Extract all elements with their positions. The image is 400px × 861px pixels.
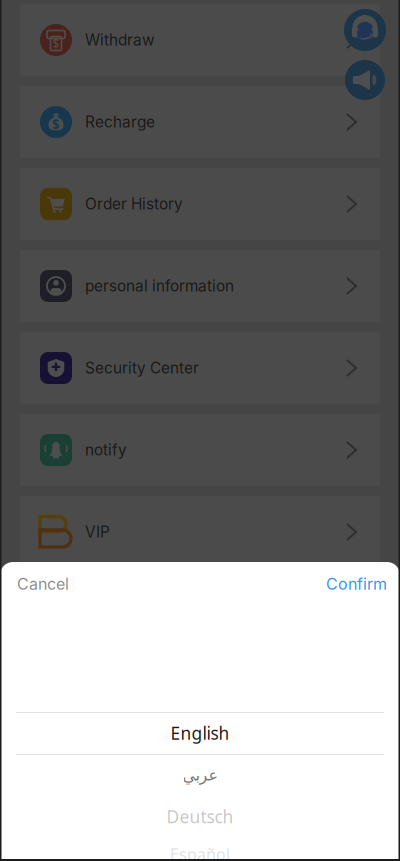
staticText: Español [170, 843, 230, 861]
staticText: عربي [182, 766, 218, 784]
staticText: English [170, 721, 229, 744]
button[interactable]: Customer service [344, 9, 386, 51]
staticText: Security Center [85, 359, 199, 377]
button[interactable]: $ [20, 86, 380, 158]
button[interactable]: Security Center [20, 332, 380, 404]
button[interactable]: Español [0, 837, 400, 861]
button[interactable]: VIP [20, 496, 380, 568]
button[interactable]: Confirm [322, 566, 387, 602]
button[interactable]: Sound [345, 60, 385, 100]
button[interactable]: personal information [20, 250, 380, 322]
staticText: Confirm [326, 574, 387, 594]
staticText: Withdraw [85, 31, 155, 49]
staticText: $ [52, 115, 60, 133]
staticText: notify [85, 441, 127, 459]
staticText: Cancel [17, 574, 69, 594]
staticText: Deutsch [166, 805, 233, 828]
staticText: $ [52, 35, 59, 51]
staticText: personal information [85, 277, 234, 295]
button[interactable]: Order History [20, 168, 380, 240]
staticText: Recharge [85, 113, 155, 131]
staticText: Order History [85, 195, 183, 213]
button[interactable]: $ [20, 4, 380, 76]
button[interactable]: Cancel [13, 566, 73, 602]
button[interactable]: عربي [0, 754, 400, 796]
staticText: VIP [85, 523, 110, 541]
button[interactable]: Deutsch [0, 796, 400, 837]
button[interactable]: English [0, 712, 400, 754]
button[interactable]: notify [20, 414, 380, 486]
